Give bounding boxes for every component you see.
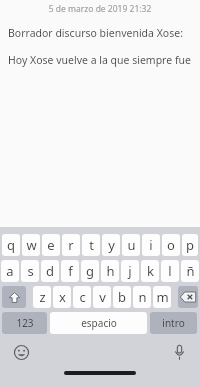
staticText: z	[39, 288, 46, 306]
staticText: u	[127, 236, 136, 254]
staticText: g	[86, 262, 94, 280]
staticText: d	[46, 262, 54, 280]
staticText: c	[79, 288, 86, 306]
button[interactable]: u	[122, 234, 140, 256]
button[interactable]: z	[33, 286, 51, 308]
staticText: x	[59, 288, 66, 306]
button[interactable]: o	[162, 234, 180, 256]
button[interactable]: e	[42, 234, 60, 256]
button[interactable]: m	[153, 286, 171, 308]
staticText: o	[167, 236, 175, 254]
staticText: y	[108, 236, 115, 254]
button[interactable]: espacio	[50, 312, 147, 334]
staticText: e	[47, 236, 55, 254]
button[interactable]: Emoji	[10, 341, 32, 363]
staticText: l	[168, 262, 172, 280]
button[interactable]: ñ	[181, 260, 199, 282]
button[interactable]: intro	[150, 312, 197, 334]
staticText: espacio	[81, 316, 117, 330]
button[interactable]: Backspace	[178, 286, 198, 308]
button[interactable]: w	[22, 234, 40, 256]
staticText: n	[138, 288, 147, 306]
button[interactable]: s	[21, 260, 39, 282]
button[interactable]: k	[141, 260, 159, 282]
staticText: m	[156, 288, 169, 306]
staticText: w	[26, 236, 37, 254]
staticText: ñ	[186, 262, 195, 280]
button[interactable]: l	[161, 260, 179, 282]
staticText: j	[128, 262, 132, 280]
button[interactable]: q	[2, 234, 20, 256]
button[interactable]: y	[102, 234, 120, 256]
button[interactable]: Dictate	[168, 341, 190, 363]
button[interactable]: 123	[2, 312, 47, 334]
button[interactable]: a	[1, 260, 19, 282]
button[interactable]: r	[62, 234, 80, 256]
button[interactable]: Shift	[2, 286, 26, 308]
button[interactable]: g	[81, 260, 99, 282]
staticText: v	[99, 288, 106, 306]
staticText: 5 de marzo de 2019 21:32	[0, 3, 200, 15]
button[interactable]: d	[41, 260, 59, 282]
button[interactable]: h	[101, 260, 119, 282]
button[interactable]: j	[121, 260, 139, 282]
button[interactable]: t	[82, 234, 100, 256]
staticText: a	[6, 262, 14, 280]
button[interactable]: v	[93, 286, 111, 308]
staticText: Hoy Xose vuelve a la que siempre fue su …	[8, 53, 200, 67]
staticText: i	[149, 236, 153, 254]
staticText: s	[27, 262, 34, 280]
staticText: intro	[162, 316, 185, 330]
staticText: f	[68, 262, 73, 280]
button[interactable]: p	[182, 234, 198, 256]
staticText: q	[7, 236, 15, 254]
button[interactable]: i	[142, 234, 160, 256]
button[interactable]: n	[133, 286, 151, 308]
button[interactable]: f	[61, 260, 79, 282]
staticText: t	[89, 236, 94, 254]
staticText: k	[147, 262, 154, 280]
staticText: b	[118, 288, 126, 306]
button[interactable]: c	[73, 286, 91, 308]
staticText: Borrador discurso bienvenida Xose:	[8, 26, 183, 40]
staticText: 123	[16, 316, 34, 330]
button[interactable]: x	[53, 286, 71, 308]
staticText: p	[186, 236, 194, 254]
staticText: r	[68, 236, 74, 254]
staticText: h	[106, 262, 115, 280]
button[interactable]: b	[113, 286, 131, 308]
